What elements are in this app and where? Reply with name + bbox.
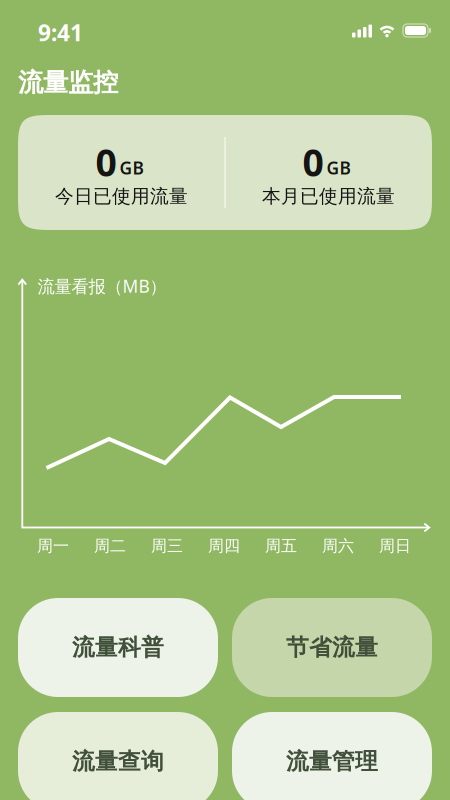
- staticText: GB: [119, 156, 143, 179]
- button[interactable]: 流量查询: [18, 712, 218, 800]
- staticText: 流量看报（MB）: [37, 274, 166, 297]
- staticText: 0: [95, 137, 116, 187]
- staticText: 节省流量: [286, 634, 378, 661]
- staticText: 今日已使用流量: [55, 185, 188, 208]
- staticText: 流量管理: [286, 748, 378, 775]
- staticText: 流量查询: [72, 748, 164, 775]
- staticText: 本月已使用流量: [262, 185, 395, 208]
- staticText: 周六: [322, 536, 354, 556]
- staticText: 流量监控: [18, 67, 118, 98]
- staticText: 周二: [94, 536, 126, 556]
- staticText: 周五: [265, 536, 297, 556]
- staticText: GB: [326, 156, 350, 179]
- staticText: 周三: [151, 536, 183, 556]
- button[interactable]: 流量科普: [18, 598, 218, 697]
- button[interactable]: 节省流量: [232, 598, 432, 697]
- button[interactable]: 流量管理: [232, 712, 432, 800]
- staticText: 流量科普: [72, 634, 164, 661]
- staticText: 周日: [379, 536, 411, 556]
- staticText: 9:41: [38, 17, 83, 48]
- staticText: 周一: [37, 536, 69, 556]
- staticText: 周四: [208, 536, 240, 556]
- staticText: 0: [302, 137, 323, 187]
